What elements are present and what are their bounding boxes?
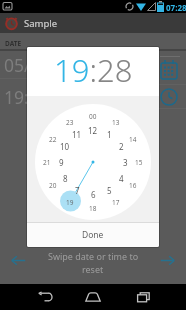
staticText: 10 xyxy=(60,141,70,152)
staticText: 5 xyxy=(107,185,112,196)
staticText: 11 xyxy=(72,129,82,140)
staticText: Swipe date or time to xyxy=(48,250,139,262)
button[interactable] xyxy=(10,252,27,268)
staticText: 2 xyxy=(119,141,124,152)
button[interactable] xyxy=(78,284,108,310)
staticText: 20 xyxy=(49,181,57,190)
staticText: 3 xyxy=(123,157,128,168)
staticText: 16 xyxy=(129,181,137,190)
staticText: 05/12/2013 xyxy=(4,53,98,77)
button[interactable] xyxy=(128,284,158,310)
staticText: 23 xyxy=(66,118,74,127)
staticText: 4 xyxy=(119,173,124,184)
staticText: 12 xyxy=(88,125,98,136)
staticText: 7 xyxy=(75,185,80,196)
staticText: 6 xyxy=(91,189,96,200)
staticText: Done xyxy=(82,229,104,241)
staticText: 19:28 xyxy=(54,49,133,91)
staticText: 07:28 xyxy=(166,2,186,13)
staticText: 19:28 xyxy=(4,85,49,109)
staticText: 00 xyxy=(89,112,97,121)
staticText: 21 xyxy=(43,158,51,167)
staticText: 13 xyxy=(112,118,120,127)
staticText: reset xyxy=(82,263,104,275)
staticText: 18 xyxy=(89,204,97,213)
staticText: 17 xyxy=(112,198,120,207)
staticText: Sample xyxy=(24,17,58,30)
button[interactable]: Sample xyxy=(0,13,186,33)
staticText: 9 xyxy=(59,157,64,168)
staticText: 19 xyxy=(66,198,74,207)
staticText: DATE xyxy=(5,39,22,48)
button[interactable] xyxy=(30,284,60,310)
button[interactable] xyxy=(159,252,176,268)
staticText: 1 xyxy=(107,129,112,140)
staticText: 15 xyxy=(135,158,143,167)
button[interactable] xyxy=(158,86,180,108)
staticText: 8 xyxy=(63,173,68,184)
button[interactable]: Done xyxy=(27,223,159,247)
staticText: 14 xyxy=(129,135,137,144)
button[interactable] xyxy=(158,58,180,82)
staticText: 22 xyxy=(49,135,57,144)
